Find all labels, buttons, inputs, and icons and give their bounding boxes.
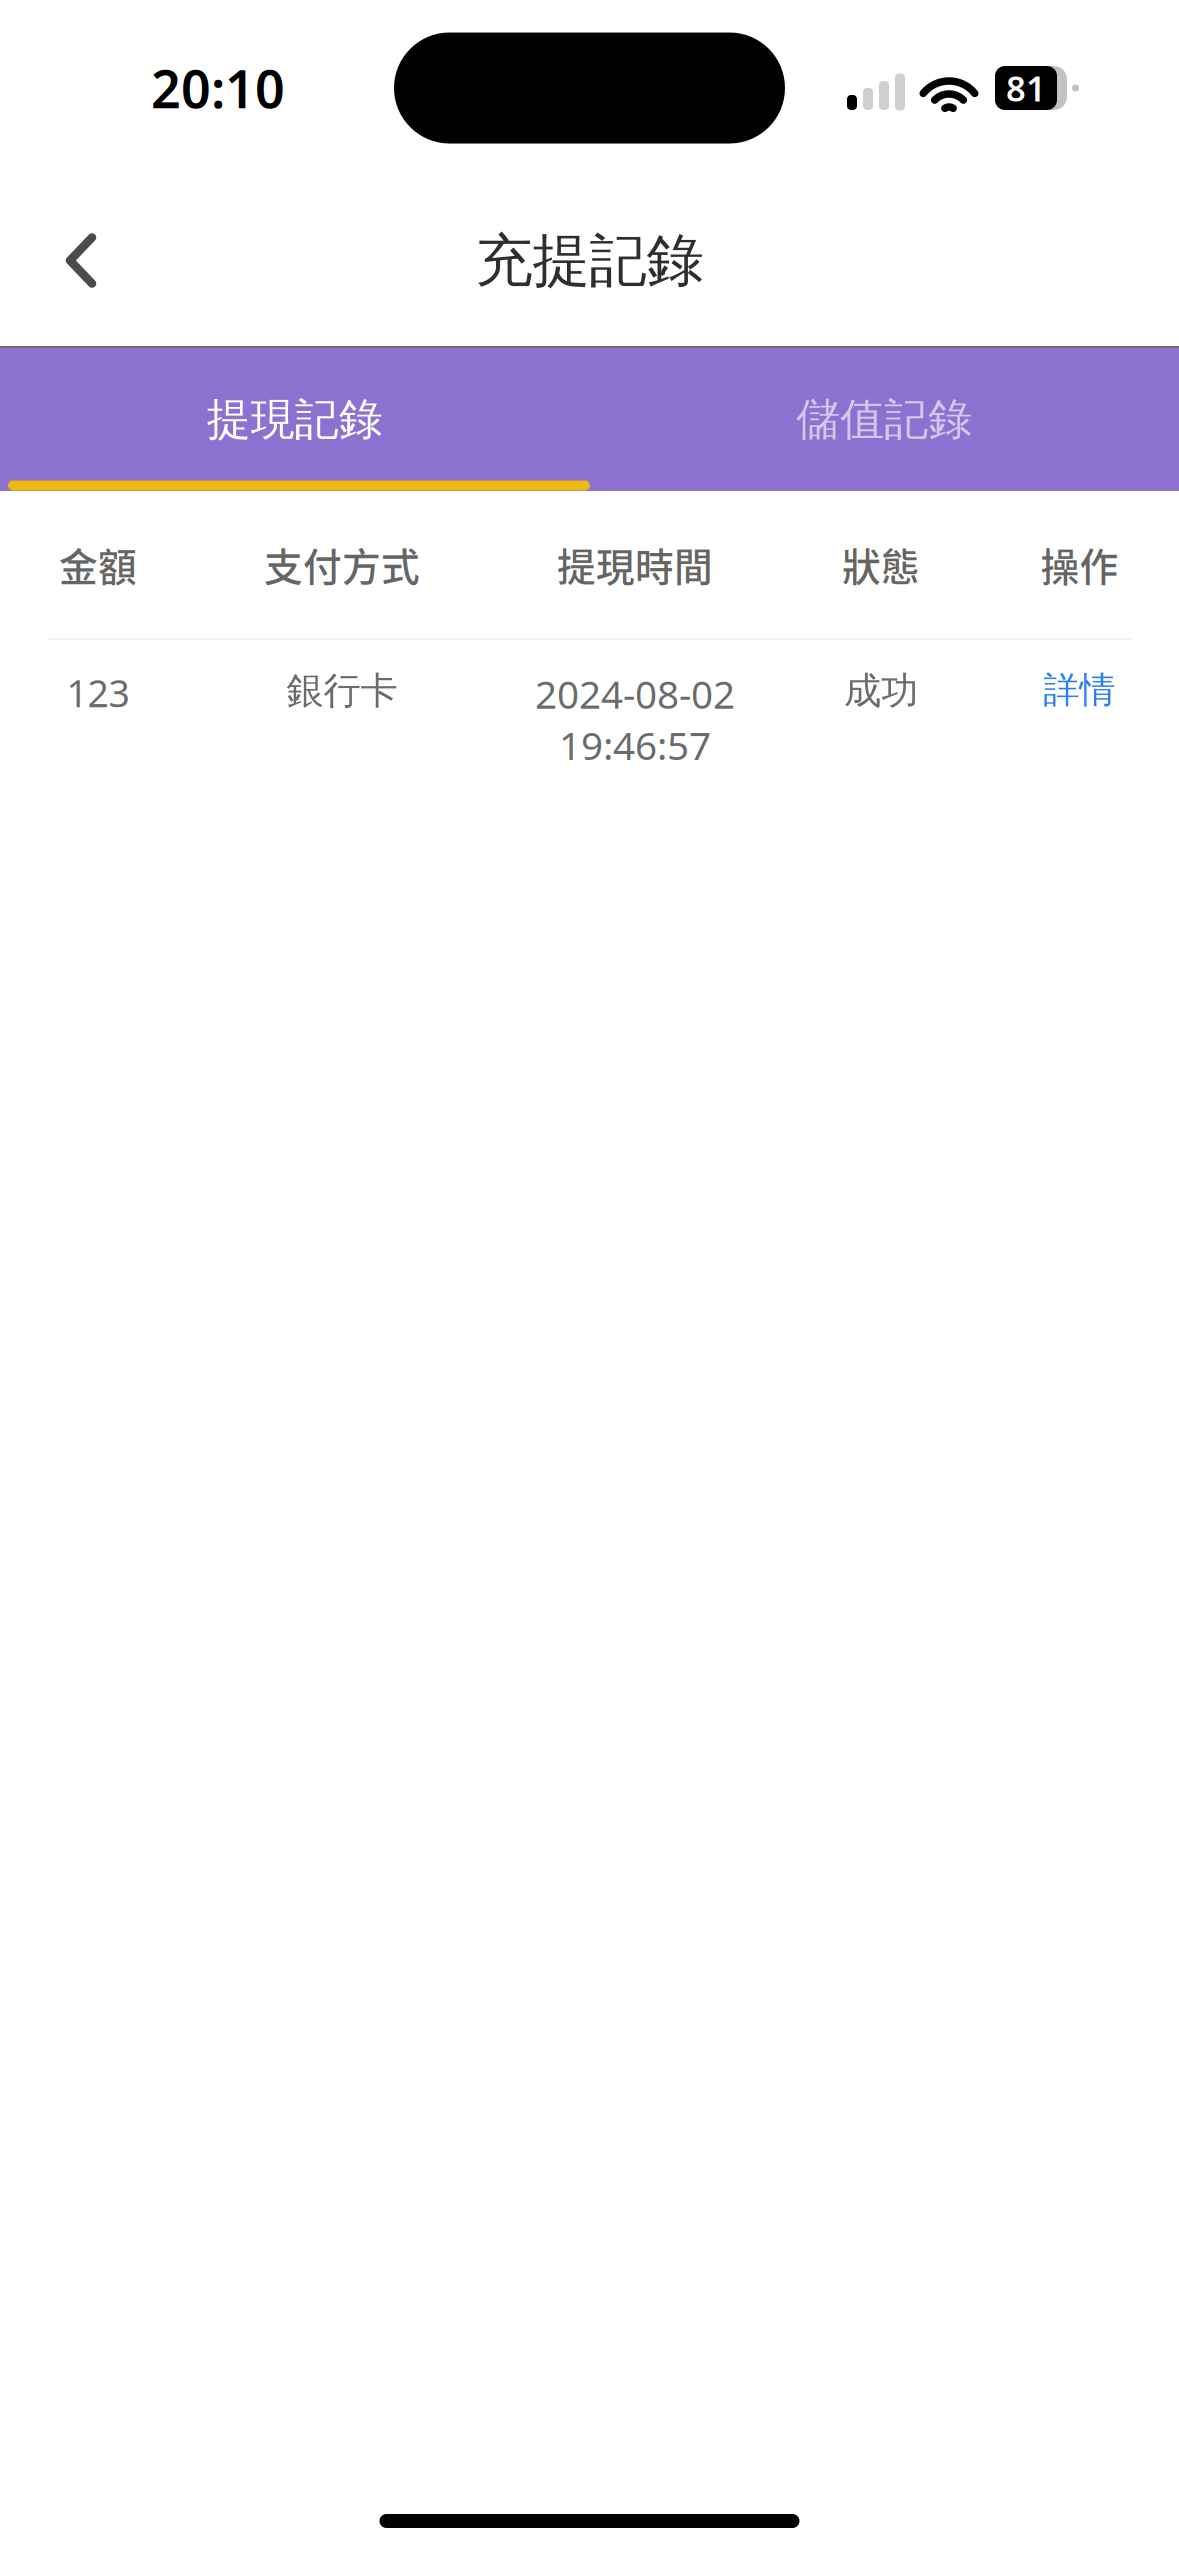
staticText: 提現記錄 [207,392,383,446]
staticText: 充提記錄 [475,226,703,296]
staticText: 詳情 [1043,668,1115,712]
staticText: 儲值記錄 [796,392,972,446]
staticText: 123 [66,668,129,718]
button[interactable]: 詳情 [980,668,1179,712]
staticText: 狀態 [842,536,920,592]
staticText: 提現時間 [557,536,713,592]
button[interactable]: 提現記錄 [0,348,589,490]
staticText: 成功 [844,668,918,714]
staticText: 81 [1006,65,1046,111]
staticText: 支付方式 [264,536,420,592]
staticText: 操作 [1040,536,1118,592]
staticText: 2024-08-02 [535,668,735,719]
staticText: 銀行卡 [286,668,397,714]
staticText: 19:46:57 [559,719,711,771]
button[interactable]: Back [0,183,147,335]
staticText: 金額 [59,536,137,592]
staticText: 20:10 [151,53,285,123]
button[interactable]: 儲值記錄 [589,348,1179,490]
